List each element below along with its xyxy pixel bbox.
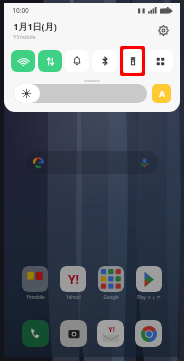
staticText: A: [159, 88, 165, 99]
button[interactable]: Play ストア: [134, 264, 164, 302]
staticText: 1月1日(月): [13, 20, 57, 32]
button[interactable]: Flashlight: [124, 50, 141, 72]
staticText: Y!mobile: [13, 33, 36, 40]
button[interactable]: Phone: [22, 320, 49, 347]
button[interactable]: Mail: [97, 320, 124, 347]
button[interactable]: Brightness: [13, 84, 147, 103]
button[interactable]: Wi-Fi: [11, 50, 35, 72]
button[interactable]: More settings: [148, 50, 173, 72]
button[interactable]: Settings: [155, 22, 171, 38]
staticText: Y!: [108, 325, 115, 335]
staticText: Yahoo!: [66, 294, 81, 300]
staticText: Play ストア: [137, 294, 161, 300]
button[interactable]: Y!mobile: [20, 264, 50, 302]
button[interactable]: Google search: [26, 151, 158, 174]
button[interactable]: Bluetooth: [92, 50, 117, 72]
staticText: 10:00: [12, 6, 29, 15]
button[interactable]: Mobile data: [38, 50, 62, 72]
button[interactable]: Chrome: [135, 320, 162, 347]
staticText: Y!mobile: [26, 294, 45, 300]
button[interactable]: Sound: [65, 50, 89, 72]
staticText: Google: [103, 294, 119, 300]
button[interactable]: Google: [96, 264, 126, 302]
button[interactable]: Camera: [60, 320, 87, 347]
button[interactable]: Auto brightness: [152, 84, 171, 103]
button[interactable]: Y!: [58, 264, 88, 302]
staticText: Y!: [68, 271, 79, 287]
